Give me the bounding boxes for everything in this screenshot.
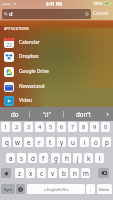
staticText: 5 bbox=[49, 123, 53, 131]
staticText: j bbox=[77, 154, 79, 163]
staticText: Dropbox bbox=[19, 53, 39, 60]
button[interactable]: f bbox=[39, 153, 48, 163]
staticText: 4 bbox=[38, 123, 42, 131]
staticText: r bbox=[38, 138, 41, 147]
button[interactable]: do bbox=[0, 107, 29, 121]
button[interactable]: Cancel bbox=[93, 8, 111, 18]
button[interactable]: b bbox=[59, 168, 68, 178]
other: Clear bbox=[85, 12, 89, 16]
button[interactable]: w bbox=[13, 137, 22, 147]
staticText: y bbox=[60, 138, 64, 147]
button[interactable]: v bbox=[48, 168, 57, 178]
staticText: u bbox=[71, 138, 75, 147]
button[interactable]: m bbox=[81, 168, 90, 178]
staticText: e bbox=[27, 138, 31, 147]
button[interactable]: Change language bbox=[16, 184, 25, 194]
button[interactable]: Newsstand bbox=[4, 79, 113, 94]
button[interactable]: y bbox=[57, 137, 66, 147]
button[interactable]: k bbox=[84, 153, 93, 163]
button[interactable]: q bbox=[2, 137, 11, 147]
staticText: g bbox=[54, 154, 58, 163]
staticText: Google Drive bbox=[19, 68, 49, 75]
staticText: 6 bbox=[60, 123, 64, 131]
staticText: o bbox=[94, 138, 98, 147]
staticText: Newsstand bbox=[19, 83, 45, 90]
button[interactable]: More suggestions bbox=[102, 107, 113, 121]
button[interactable]: 5 bbox=[46, 122, 55, 132]
button[interactable]: . bbox=[86, 184, 95, 194]
button[interactable]: d bbox=[2, 9, 91, 19]
staticText: do bbox=[11, 110, 19, 118]
button[interactable]: Space bbox=[27, 184, 85, 194]
button[interactable]: don't bbox=[64, 107, 102, 121]
button[interactable]: s bbox=[17, 153, 26, 163]
button[interactable]: Shift bbox=[1, 168, 11, 178]
button[interactable]: n bbox=[70, 168, 79, 178]
staticText: 0 bbox=[104, 123, 108, 131]
staticText: Video bbox=[19, 97, 32, 104]
staticText: 9 bbox=[93, 123, 97, 131]
button[interactable]: g bbox=[51, 153, 60, 163]
staticText: w bbox=[15, 138, 20, 147]
button[interactable]: z bbox=[15, 168, 24, 178]
button[interactable]: r bbox=[35, 137, 44, 147]
button[interactable]: t bbox=[46, 137, 55, 147]
button[interactable]: i bbox=[80, 137, 89, 147]
staticText: d bbox=[31, 154, 35, 163]
staticText: don't bbox=[76, 110, 91, 118]
button[interactable]: c bbox=[37, 168, 46, 178]
button[interactable]: a bbox=[6, 153, 15, 163]
staticText: f bbox=[42, 154, 45, 163]
button[interactable]: 8 bbox=[79, 122, 88, 132]
button[interactable]: 0 bbox=[101, 122, 110, 132]
staticText: b bbox=[62, 169, 66, 178]
button[interactable]: p bbox=[102, 137, 111, 147]
button[interactable]: l bbox=[95, 153, 104, 163]
button[interactable]: 4 bbox=[35, 122, 44, 132]
staticText: . bbox=[90, 185, 92, 193]
button[interactable]: 22 bbox=[4, 35, 113, 50]
button[interactable]: e bbox=[24, 137, 33, 147]
button[interactable]: 9 bbox=[90, 122, 99, 132]
staticText: Calendar bbox=[19, 39, 40, 46]
staticText: c bbox=[40, 169, 44, 178]
staticText: z bbox=[18, 169, 21, 178]
button[interactable]: Done bbox=[97, 184, 112, 194]
button[interactable]: d bbox=[28, 153, 37, 163]
button[interactable]: Sym bbox=[1, 184, 15, 194]
button[interactable]: h bbox=[62, 153, 71, 163]
button[interactable]: 3 bbox=[24, 122, 33, 132]
button[interactable]: 7 bbox=[68, 122, 77, 132]
staticText: 100% bbox=[93, 1, 103, 6]
staticText: 22 bbox=[6, 41, 13, 48]
button[interactable]: 6 bbox=[57, 122, 66, 132]
button[interactable]: j bbox=[73, 153, 82, 163]
staticText: 1 bbox=[4, 123, 8, 131]
button[interactable]: u bbox=[68, 137, 77, 147]
staticText: 8 bbox=[82, 123, 86, 131]
staticText: English(US) bbox=[47, 187, 66, 192]
staticText: h bbox=[65, 154, 69, 163]
staticText: 9:41 PM bbox=[46, 1, 63, 7]
button[interactable]: “d” bbox=[30, 107, 63, 121]
staticText: 3 bbox=[27, 123, 31, 131]
staticText: 7 bbox=[71, 123, 75, 131]
button[interactable]: 2 bbox=[12, 122, 21, 132]
button[interactable]: x bbox=[26, 168, 35, 178]
staticText: k bbox=[87, 154, 91, 163]
staticText: Sym bbox=[4, 187, 12, 192]
staticText: a bbox=[9, 154, 13, 163]
staticText: ▸ bbox=[67, 188, 69, 192]
button[interactable]: Backspace bbox=[98, 168, 109, 178]
staticText: Done bbox=[99, 187, 110, 192]
button[interactable]: Video bbox=[4, 93, 113, 108]
button[interactable]: Dropbox bbox=[4, 49, 113, 64]
button[interactable]: o bbox=[91, 137, 100, 147]
staticText: d bbox=[9, 10, 13, 18]
staticText: 2 bbox=[15, 123, 19, 131]
staticText: s bbox=[20, 154, 24, 163]
staticText: n bbox=[73, 169, 77, 178]
button[interactable]: 1 bbox=[1, 122, 10, 132]
staticText: p bbox=[105, 138, 109, 147]
button[interactable]: Google Drive bbox=[4, 64, 113, 79]
